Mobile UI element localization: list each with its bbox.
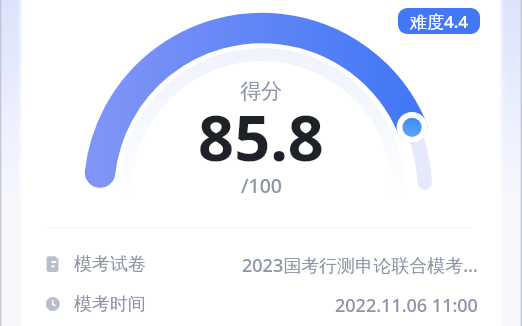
other: 模考试卷 [46, 256, 62, 272]
staticText: 2022.11.06 11:00 [335, 293, 478, 315]
staticText: 模考试卷 [74, 253, 146, 275]
staticText: /100 [241, 172, 282, 199]
other: 模考时间 [46, 296, 62, 312]
button[interactable]: 模考试卷 [46, 253, 478, 275]
staticText: 2023国考行测申论联合模考… [242, 253, 478, 275]
staticText: 得分 [240, 78, 282, 104]
staticText: 85.8 [198, 94, 324, 180]
staticText: 模考时间 [74, 293, 146, 315]
staticText: 难度4.4 [410, 10, 469, 33]
button[interactable]: 模考时间 [46, 293, 478, 315]
button[interactable]: 难度4.4 [398, 8, 480, 34]
